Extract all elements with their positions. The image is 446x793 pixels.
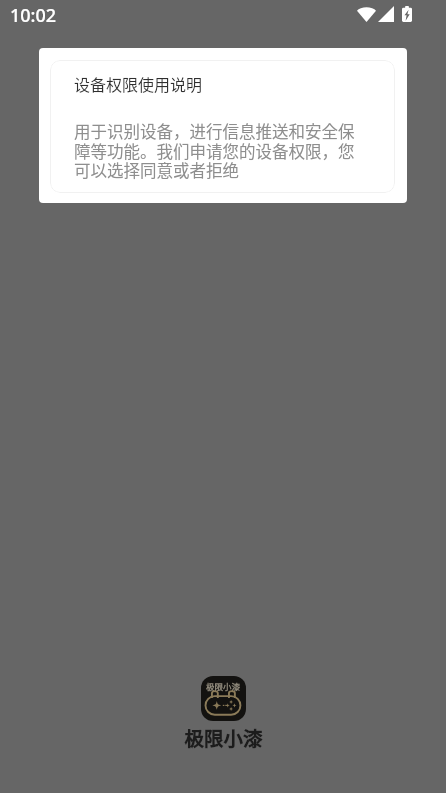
button[interactable]: 极限小漆 app icon [201, 676, 246, 721]
staticText: 10:02 [10, 3, 57, 28]
staticText: 极限小漆 [184, 723, 263, 751]
button[interactable]: 设备权限使用说明 [39, 48, 407, 203]
staticText: 设备权限使用说明 [74, 72, 203, 95]
staticText: 用于识别设备，进行信息推送和安全保障等功能。我们申请您的设备权限，您可以选择同意… [74, 119, 360, 181]
staticText: 极限小漆 [206, 680, 241, 692]
